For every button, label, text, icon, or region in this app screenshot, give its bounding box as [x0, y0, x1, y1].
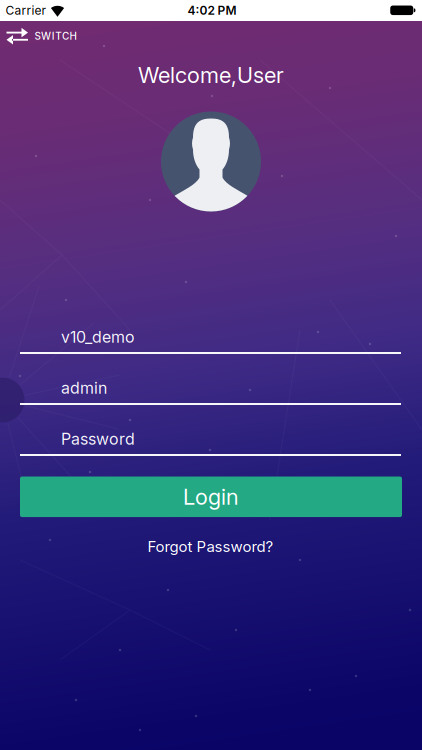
- staticText: v10_demo: [61, 327, 135, 346]
- staticText: Forgot Password?: [147, 538, 273, 555]
- button[interactable]: Forgot Password?: [147, 538, 273, 555]
- staticText: Welcome,User: [138, 62, 284, 88]
- button[interactable]: Login: [20, 477, 402, 517]
- staticText: 4:02 PM: [187, 3, 236, 18]
- button[interactable]: admin: [20, 378, 401, 405]
- staticText: admin: [61, 378, 107, 397]
- staticText: Password: [61, 429, 135, 448]
- button[interactable]: Password: [20, 429, 401, 456]
- staticText: Carrier: [5, 3, 46, 18]
- staticText: Login: [183, 484, 239, 510]
- staticText: SWITCH: [34, 30, 76, 42]
- button[interactable]: SWITCH: [5, 27, 76, 44]
- button[interactable]: v10_demo: [20, 327, 401, 354]
